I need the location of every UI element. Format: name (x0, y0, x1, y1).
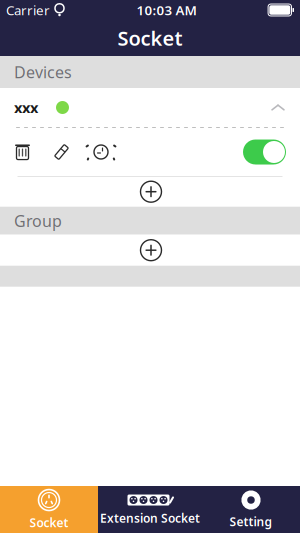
button[interactable]: Add (0, 235, 300, 266)
button[interactable]: Setting (202, 486, 300, 533)
button[interactable]: Socket (0, 486, 98, 533)
staticText: Extension Socket (100, 510, 200, 526)
staticText: 10:03 AM (137, 1, 197, 19)
button[interactable]: Add (0, 177, 300, 207)
button[interactable]: Edit (31, 143, 70, 161)
staticText: Socket (117, 25, 182, 51)
staticText: Carrier (6, 1, 50, 19)
button[interactable]: xxx (0, 88, 300, 127)
staticText: xxx (14, 98, 38, 117)
staticText: Group (14, 210, 62, 231)
button[interactable]: Extension Socket (98, 486, 202, 533)
staticText: Setting (229, 513, 272, 529)
button[interactable]: Power (243, 139, 286, 164)
button[interactable]: Delete (14, 143, 31, 161)
staticText: Devices (14, 61, 72, 83)
staticText: Socket (29, 514, 68, 530)
button[interactable]: Timer (70, 143, 110, 161)
